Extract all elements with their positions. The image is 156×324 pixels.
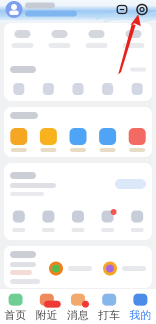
button[interactable]: [4, 83, 34, 95]
button[interactable]: [122, 128, 152, 152]
button[interactable]: 消息: [62, 292, 94, 322]
button[interactable]: [4, 209, 34, 232]
button[interactable]: [41, 30, 78, 48]
button[interactable]: [49, 261, 92, 275]
button[interactable]: [34, 128, 63, 152]
button[interactable]: 附近: [31, 292, 62, 322]
button[interactable]: [103, 261, 146, 275]
button[interactable]: [93, 209, 122, 232]
button[interactable]: [63, 83, 93, 95]
staticText: 首页: [5, 309, 27, 322]
staticText: 我的: [129, 309, 151, 322]
button[interactable]: 首页: [0, 292, 31, 322]
button[interactable]: [63, 209, 93, 232]
button[interactable]: [4, 30, 41, 48]
staticText: 消息: [67, 309, 89, 322]
button[interactable]: 打车: [94, 292, 125, 322]
button[interactable]: [78, 30, 115, 48]
button[interactable]: [34, 209, 63, 232]
button[interactable]: Profile photo: [3, 0, 25, 19]
button[interactable]: View all orders: [115, 179, 146, 189]
button[interactable]: [93, 83, 122, 95]
button[interactable]: Messages: [115, 2, 129, 17]
staticText: 附近: [36, 309, 58, 322]
button[interactable]: 我的: [125, 292, 156, 322]
button[interactable]: [122, 83, 152, 95]
staticText: 打车: [98, 309, 120, 322]
button[interactable]: [122, 209, 152, 232]
button[interactable]: [63, 128, 93, 152]
button[interactable]: Settings: [135, 2, 149, 17]
button[interactable]: [4, 128, 34, 152]
button[interactable]: [93, 128, 122, 152]
button[interactable]: [34, 83, 63, 95]
button[interactable]: [115, 30, 152, 48]
